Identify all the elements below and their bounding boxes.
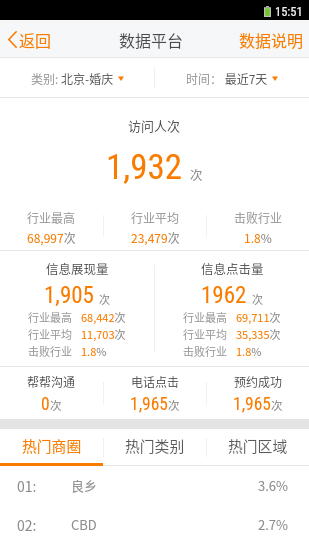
staticText: 类别: 北京-婚庆 bbox=[31, 70, 114, 87]
button[interactable]: 类别: 北京-婚庆 bbox=[0, 58, 154, 98]
button[interactable]: 电话点击 bbox=[104, 367, 206, 419]
staticText: 1,932 bbox=[106, 147, 182, 188]
staticText: 68,997次 bbox=[27, 229, 76, 246]
staticText: 良乡 bbox=[71, 476, 98, 495]
staticText: 次 bbox=[99, 291, 110, 307]
button[interactable]: 时间： 最近7天 bbox=[155, 58, 309, 98]
staticText: 69,711次 bbox=[236, 309, 281, 325]
button[interactable]: 02: bbox=[0, 505, 309, 544]
staticText: 23,479次 bbox=[131, 229, 180, 246]
staticText: 02: bbox=[17, 515, 37, 535]
staticText: 1.8% bbox=[244, 229, 272, 246]
staticText: 11,703次 bbox=[81, 326, 126, 342]
button[interactable]: 行业最高 bbox=[0, 200, 103, 251]
staticText: 01: bbox=[17, 476, 37, 496]
staticText: 热门区域 bbox=[228, 435, 288, 456]
staticText: 热门商圈 bbox=[22, 435, 82, 456]
staticText: 信息展现量 bbox=[46, 259, 109, 277]
staticText: 信息点击量 bbox=[201, 259, 264, 277]
staticText: 电话点击 bbox=[131, 373, 180, 390]
staticText: 次 bbox=[252, 291, 263, 307]
button[interactable]: 返回 bbox=[0, 20, 60, 58]
button[interactable]: 行业平均 bbox=[104, 200, 206, 251]
button[interactable]: 信息展现量 bbox=[0, 251, 154, 367]
staticText: 行业最高 bbox=[27, 209, 76, 226]
staticText: 次 bbox=[271, 397, 283, 414]
staticText: 行业平均 bbox=[131, 209, 180, 226]
staticText: 次 bbox=[190, 165, 203, 183]
button[interactable]: 热门区域 bbox=[207, 429, 309, 466]
button[interactable]: 预约成功 bbox=[207, 367, 309, 419]
staticText: 1,965 bbox=[130, 394, 168, 415]
staticText: 1,965 bbox=[233, 394, 271, 415]
button[interactable]: 帮帮沟通 bbox=[0, 367, 103, 419]
staticText: 1.8% bbox=[236, 343, 262, 359]
staticText: 2.7% bbox=[258, 515, 289, 534]
button[interactable]: 数据说明 bbox=[232, 20, 309, 58]
staticText: 击败行业 bbox=[183, 343, 227, 359]
staticText: CBD bbox=[71, 515, 97, 534]
staticText: 1.8% bbox=[81, 343, 107, 359]
staticText: 1,905 bbox=[44, 282, 94, 309]
staticText: 次 bbox=[168, 397, 180, 414]
button[interactable]: 热门商圈 bbox=[0, 429, 103, 466]
button[interactable]: 信息点击量 bbox=[155, 251, 309, 367]
staticText: 行业最高 bbox=[183, 309, 227, 325]
staticText: 次 bbox=[50, 397, 62, 414]
staticText: 0 bbox=[41, 394, 50, 415]
staticText: 数据平台 bbox=[119, 28, 184, 51]
button[interactable]: 击败行业 bbox=[207, 200, 309, 251]
staticText: 击败行业 bbox=[28, 343, 72, 359]
staticText: 预约成功 bbox=[234, 373, 283, 390]
button[interactable]: 热门类别 bbox=[104, 429, 206, 466]
staticText: 35,335次 bbox=[236, 326, 281, 342]
staticText: 68,442次 bbox=[81, 309, 126, 325]
staticText: 行业平均 bbox=[28, 326, 72, 342]
staticText: 行业平均 bbox=[183, 326, 227, 342]
staticText: 帮帮沟通 bbox=[27, 373, 76, 390]
staticText: 行业最高 bbox=[28, 309, 72, 325]
staticText: 1962 bbox=[201, 282, 247, 309]
staticText: 时间： 最近7天 bbox=[186, 70, 268, 87]
staticText: 热门类别 bbox=[125, 435, 185, 456]
staticText: 3.6% bbox=[258, 476, 289, 495]
staticText: 访问人次 bbox=[128, 116, 181, 135]
staticText: 数据说明 bbox=[239, 28, 304, 51]
staticText: 击败行业 bbox=[234, 209, 283, 226]
button[interactable]: 01: bbox=[0, 466, 309, 505]
staticText: 15:51 bbox=[275, 4, 303, 19]
staticText: 返回 bbox=[19, 28, 52, 51]
